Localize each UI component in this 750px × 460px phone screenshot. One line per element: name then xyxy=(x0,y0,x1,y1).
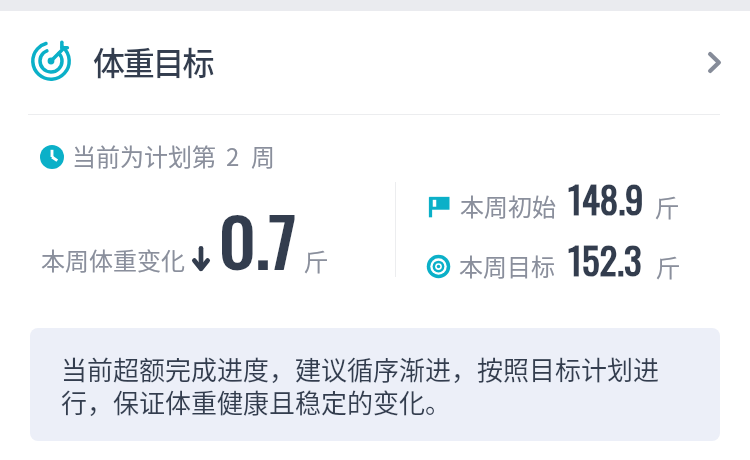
staticText: 体重目标 xyxy=(93,38,213,84)
staticText: 152.3 xyxy=(568,231,642,287)
staticText: 2 xyxy=(226,138,240,173)
staticText: 斤 xyxy=(655,189,679,224)
staticText: 本周目标 xyxy=(459,248,555,283)
other: 查看体重目标详情 xyxy=(708,52,721,73)
staticText: 斤 xyxy=(304,243,328,278)
staticText: 本周初始 xyxy=(460,188,556,223)
staticText: 当前超额完成进度，建议循序渐进，按照目标计划进行，保证体重健康且稳定的变化。 xyxy=(61,350,675,421)
button[interactable]: 体重目标 xyxy=(0,11,750,114)
staticText: 148.9 xyxy=(568,170,644,226)
staticText: 斤 xyxy=(656,249,680,284)
staticText: 本周体重变化 xyxy=(41,242,185,277)
staticText: 0.7 xyxy=(219,191,296,287)
staticText: 周 xyxy=(251,138,275,173)
staticText: 当前为计划第 xyxy=(72,138,216,173)
